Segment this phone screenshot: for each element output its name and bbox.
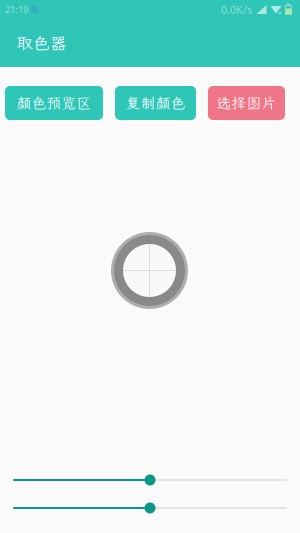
staticText: 21:19	[5, 3, 28, 16]
staticText: 0.0K/s	[221, 2, 252, 17]
staticText: 颜色预览区	[16, 93, 91, 113]
staticText: 取色器	[16, 32, 67, 54]
button[interactable]: Adjust value	[13, 497, 287, 519]
button[interactable]: 颜色预览区	[5, 86, 103, 120]
button[interactable]: Adjust value	[13, 469, 287, 491]
staticText: 复制颜色	[125, 93, 185, 113]
button[interactable]: 选择图片	[208, 86, 285, 120]
button[interactable]: 复制颜色	[115, 86, 196, 120]
staticText: 选择图片	[216, 93, 276, 113]
